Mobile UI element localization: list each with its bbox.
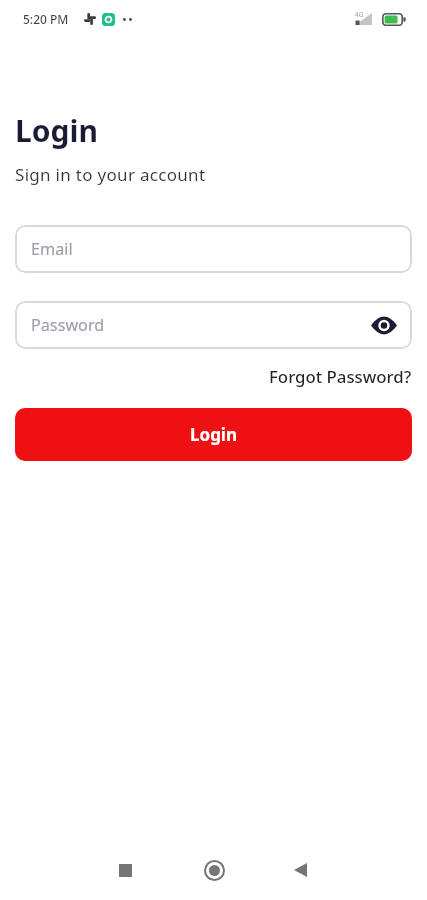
staticText: Login xyxy=(190,423,238,446)
button[interactable] xyxy=(199,855,229,885)
staticText: 4G xyxy=(355,10,364,19)
staticText: Email xyxy=(31,238,73,260)
staticText: Password xyxy=(31,314,105,336)
staticText: Sign in to your account xyxy=(15,163,206,186)
button[interactable]: Password xyxy=(15,301,412,349)
staticText: Login xyxy=(15,110,98,151)
button[interactable] xyxy=(112,857,138,883)
button[interactable]: Login xyxy=(15,408,412,461)
staticText: 5:20 PM xyxy=(23,11,69,27)
button[interactable]: Email xyxy=(15,225,412,273)
button[interactable] xyxy=(287,857,313,883)
button[interactable]: Forgot Password? xyxy=(269,365,412,388)
button[interactable] xyxy=(371,317,397,334)
